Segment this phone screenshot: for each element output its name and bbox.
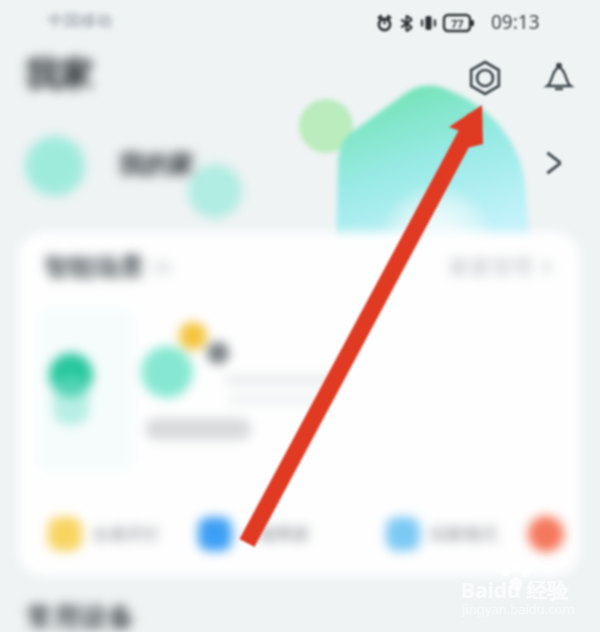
button[interactable]: 我的家 — [0, 118, 600, 218]
button[interactable]: Open home — [533, 143, 573, 183]
staticText: 中国移动 — [48, 11, 112, 31]
button[interactable]: Notifications — [539, 58, 579, 98]
staticText: 全屋开灯 — [92, 524, 160, 545]
staticText: (3) — [152, 256, 171, 278]
staticText: 常用设备 — [26, 601, 134, 632]
staticText: 我家 — [25, 53, 93, 96]
button[interactable]: 回家模式 — [386, 516, 498, 552]
staticText: 我的家 — [119, 149, 194, 180]
button[interactable]: 全屋开灯 — [48, 516, 160, 552]
staticText: Baidu 经验 — [461, 576, 569, 605]
staticText: 回家模式 — [430, 524, 498, 545]
staticText: 09:13 — [491, 9, 540, 35]
staticText: 77 — [451, 16, 464, 31]
button[interactable]: 家庭管理 — [449, 254, 558, 280]
button[interactable]: Scenes — [465, 58, 505, 98]
staticText: 家庭管理 — [449, 254, 533, 280]
staticText: 一键离家 — [242, 524, 310, 545]
staticText: 智能场景 — [44, 252, 144, 283]
button[interactable]: 一键离家 — [198, 516, 310, 552]
button[interactable]: More scenes — [528, 516, 564, 552]
